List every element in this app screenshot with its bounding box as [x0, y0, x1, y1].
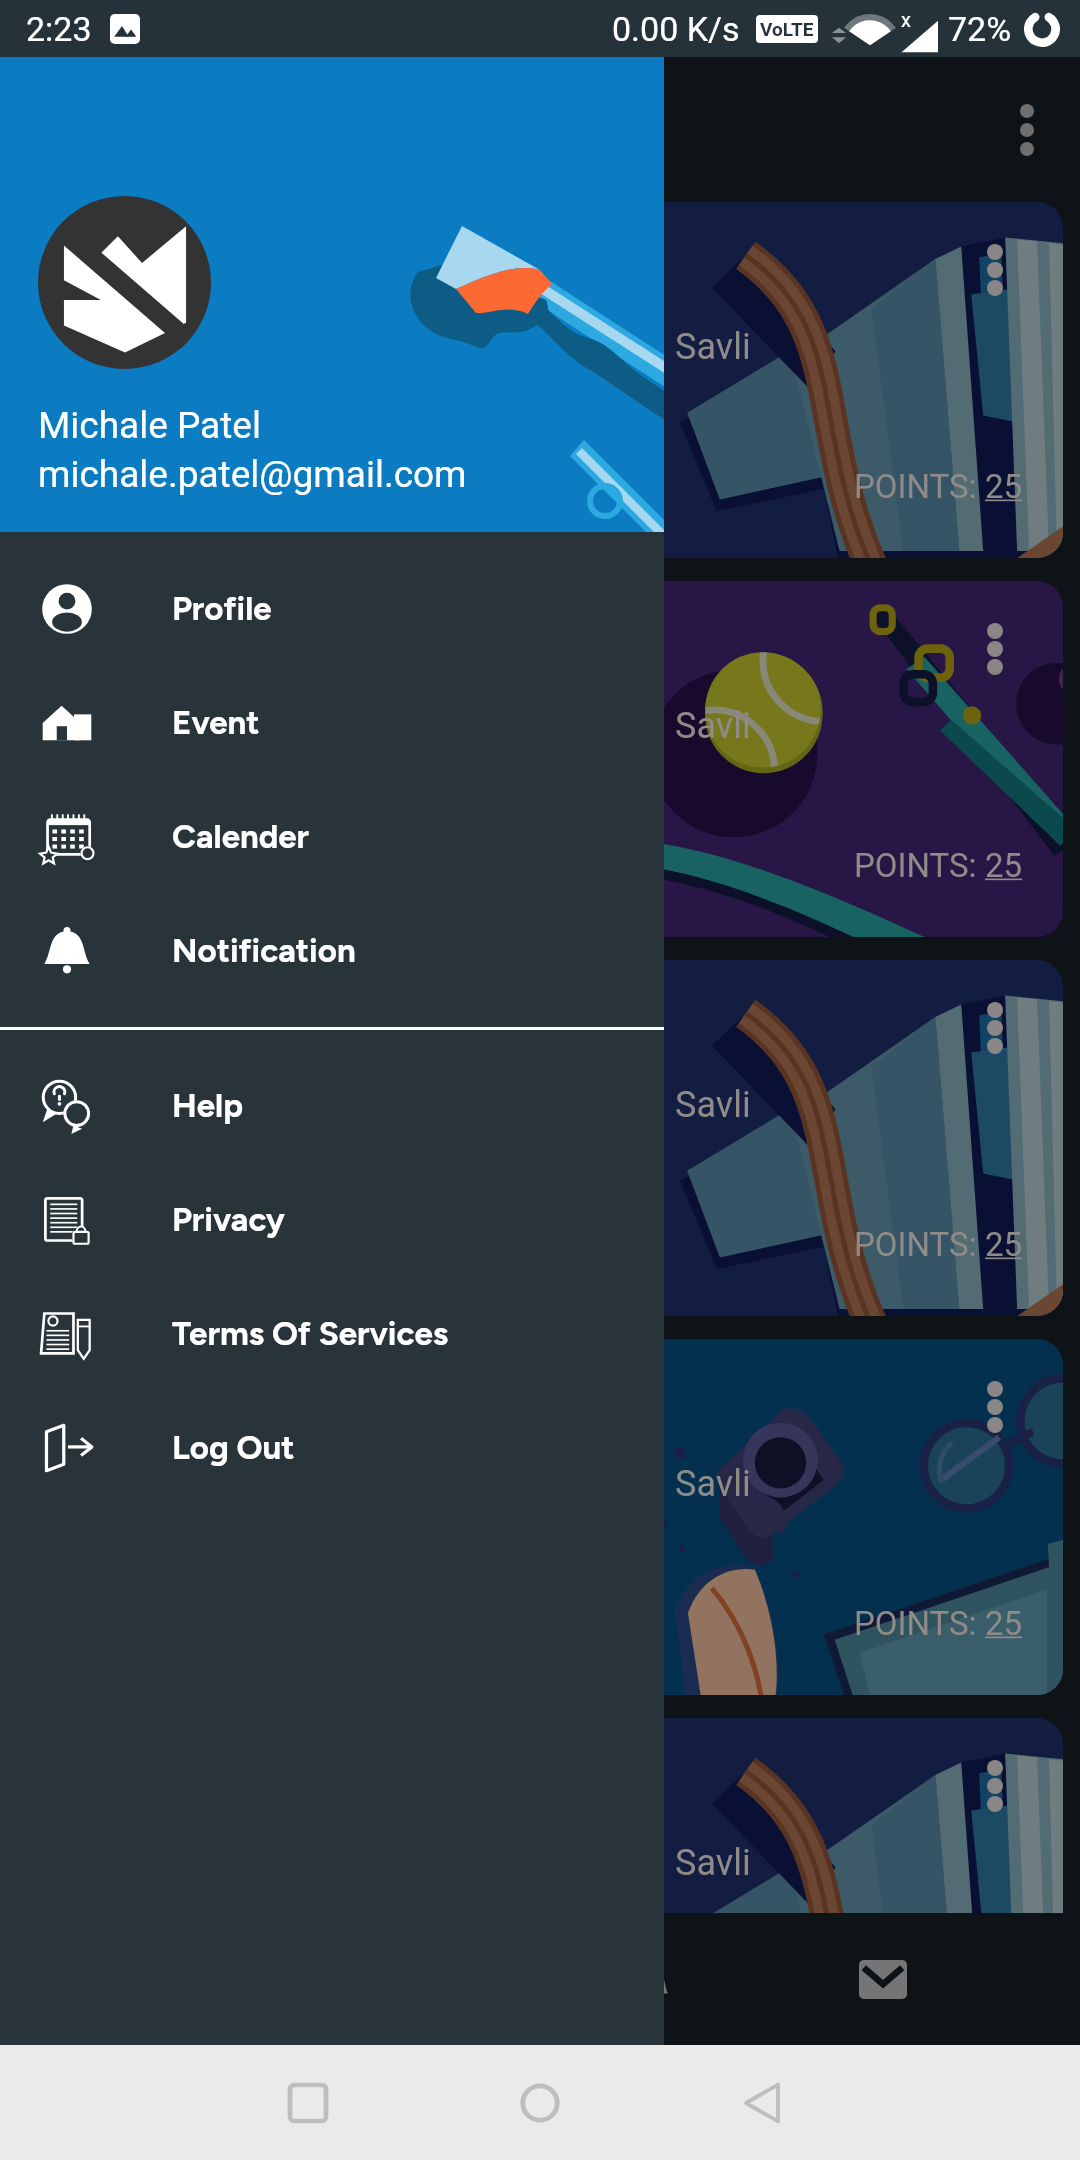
- button[interactable]: Savli: [664, 1718, 1063, 1913]
- staticText: Notification: [172, 931, 356, 971]
- staticText: 2:23: [26, 9, 92, 49]
- staticText: POINTS:: [854, 846, 985, 885]
- staticText: Savli: [675, 1463, 751, 1505]
- button[interactable]: Savli: [664, 202, 1063, 558]
- button[interactable]: Help: [0, 1049, 664, 1163]
- staticText: x: [901, 8, 911, 31]
- staticText: michale.patel@gmail.com: [38, 453, 467, 496]
- staticText: Help: [172, 1086, 243, 1126]
- button[interactable]: Savli: [664, 1339, 1063, 1695]
- button[interactable]: Profile photo: [38, 196, 211, 369]
- staticText: VoLTE: [760, 18, 814, 40]
- button[interactable]: Savli: [664, 581, 1063, 937]
- button[interactable]: Savli: [664, 960, 1063, 1316]
- staticText: Savli: [675, 1842, 751, 1884]
- button[interactable]: Terms Of Services: [0, 1277, 664, 1391]
- staticText: Michale Patel: [38, 404, 261, 447]
- button[interactable]: Profile: [0, 552, 664, 666]
- staticText: Savli: [675, 705, 751, 747]
- button[interactable]: Notifications: [590, 1913, 702, 2045]
- button[interactable]: Recent apps: [254, 2045, 362, 2160]
- button[interactable]: Calender: [0, 780, 664, 894]
- button[interactable]: Back: [708, 2045, 816, 2160]
- staticText: Terms Of Services: [172, 1314, 449, 1354]
- staticText: Savli: [675, 1084, 751, 1126]
- button[interactable]: Event: [0, 666, 664, 780]
- staticText: POINTS:: [854, 467, 985, 506]
- staticText: 25: [985, 846, 1023, 885]
- staticText: Calender: [172, 817, 310, 857]
- staticText: Savli: [675, 326, 751, 368]
- staticText: POINTS:: [854, 1225, 985, 1264]
- staticText: 25: [985, 467, 1023, 506]
- staticText: POINTS:: [854, 1604, 985, 1643]
- button[interactable]: Home: [486, 2045, 594, 2160]
- staticText: 25: [985, 1604, 1023, 1643]
- staticText: 0.00 K/s: [612, 9, 740, 49]
- staticText: Log Out: [172, 1428, 295, 1468]
- staticText: 25: [985, 1225, 1023, 1264]
- button[interactable]: More options: [979, 82, 1075, 178]
- staticText: Profile: [172, 589, 272, 629]
- button[interactable]: Privacy: [0, 1163, 664, 1277]
- button[interactable]: Log Out: [0, 1391, 664, 1505]
- staticText: 72%: [948, 9, 1012, 49]
- staticText: Privacy: [172, 1200, 285, 1240]
- button[interactable]: Mail: [827, 1913, 939, 2045]
- button[interactable]: Notification: [0, 894, 664, 1008]
- staticText: Event: [172, 703, 260, 743]
